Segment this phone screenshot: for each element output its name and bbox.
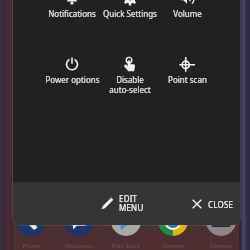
button[interactable]: Chrome — [158, 206, 188, 250]
staticText: Chrome — [162, 242, 185, 250]
button[interactable]: Volume — [150, 0, 224, 34]
staticText: Volume — [173, 8, 202, 19]
staticText: Point scan — [168, 74, 207, 85]
staticText: CLOSE — [208, 199, 234, 210]
button[interactable]: CLOSE — [191, 198, 234, 210]
staticText: Disable auto-select — [109, 74, 151, 95]
staticText: Power options — [45, 74, 100, 85]
button[interactable]: Camera — [206, 206, 236, 250]
button[interactable]: Power options — [35, 53, 109, 100]
button[interactable]: Disable auto-select — [93, 53, 167, 100]
staticText: Messages — [65, 242, 93, 250]
staticText: EDIT MENU — [119, 193, 144, 214]
button[interactable]: Point scan — [150, 53, 224, 100]
staticText: Camera — [210, 242, 232, 250]
button[interactable]: Play Store — [111, 206, 141, 250]
staticText: Play Store — [112, 242, 140, 250]
button[interactable]: EDIT MENU — [101, 193, 144, 214]
staticText: Quick Settings — [103, 8, 157, 19]
button[interactable]: Notifications — [35, 0, 109, 34]
button[interactable]: Quick Settings — [93, 0, 167, 34]
staticText: Notifications — [48, 8, 96, 19]
button[interactable]: Phone — [16, 206, 46, 250]
button[interactable]: Messages — [64, 206, 94, 250]
staticText: Phone — [22, 242, 41, 250]
